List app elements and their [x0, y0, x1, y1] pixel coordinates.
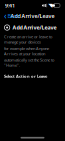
staticText: Create an arrive or leave to manage your… — [4, 34, 52, 45]
staticText: automatically set the Scene to "Home". — [4, 57, 54, 68]
staticText: ‹ — [4, 11, 7, 21]
staticText: ◥ — [48, 2, 52, 9]
button[interactable]: ‹ — [1, 9, 23, 23]
staticText: Add Arrive/Leave — [10, 12, 54, 20]
staticText: Back — [8, 12, 20, 20]
staticText: 9:41 — [5, 2, 15, 9]
staticText: Select Action or Leave — [4, 73, 47, 79]
staticText: for example when Anyone Arrives at your … — [4, 46, 49, 56]
staticText: Add Arrive/Leave — [12, 24, 56, 31]
